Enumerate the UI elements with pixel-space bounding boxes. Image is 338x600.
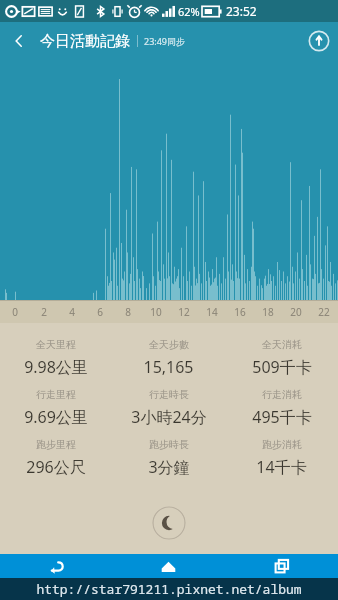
staticText: 18 [262, 305, 274, 319]
staticText: 296公尺 [26, 456, 86, 478]
button[interactable]: 跑步消耗 [225, 435, 338, 485]
button[interactable]: 跑步時長 [112, 435, 225, 485]
staticText: 4 [69, 305, 75, 319]
staticText: 今日活動記錄 [40, 32, 130, 51]
staticText: 8 [125, 305, 131, 319]
staticText: 全天里程 [36, 338, 76, 351]
staticText: 16 [234, 305, 246, 319]
button[interactable]: Home [112, 554, 225, 578]
button[interactable]: 跑步里程 [0, 435, 112, 485]
staticText: 14 [206, 305, 218, 319]
button[interactable]: Back [0, 554, 112, 578]
staticText: 全天步數 [149, 338, 189, 351]
staticText: 全天消耗 [262, 338, 302, 351]
staticText: 行走里程 [36, 388, 76, 401]
staticText: 15,165 [143, 356, 194, 378]
staticText: http://star791211.pixnet.net/album [36, 580, 302, 598]
staticText: 跑步時長 [149, 438, 189, 451]
button[interactable]: Share [300, 22, 338, 60]
staticText: 行走時長 [149, 388, 189, 401]
staticText: 509千卡 [252, 356, 312, 378]
button[interactable]: 全天步數 [112, 335, 225, 385]
staticText: 20 [290, 305, 302, 319]
staticText: 22 [318, 305, 330, 319]
staticText: 12 [178, 305, 190, 319]
staticText: 23:49同步 [144, 35, 186, 47]
button[interactable]: 行走時長 [112, 385, 225, 435]
staticText: 62% [178, 4, 200, 19]
staticText: 10 [150, 305, 162, 319]
staticText: 0 [12, 305, 18, 319]
staticText: 3分鐘 [148, 456, 190, 478]
button[interactable]: Recent apps [225, 554, 338, 578]
staticText: 9.98公里 [24, 356, 88, 378]
button[interactable]: 行走消耗 [225, 385, 338, 435]
staticText: 14千卡 [256, 456, 307, 478]
staticText: 23:52 [226, 3, 257, 19]
button[interactable]: 全天消耗 [225, 335, 338, 385]
staticText: 行走消耗 [262, 388, 302, 401]
staticText: 跑步消耗 [262, 438, 302, 451]
staticText: 3小時24分 [131, 406, 207, 428]
button[interactable]: Sleep [152, 506, 186, 540]
staticText: 2 [41, 305, 47, 319]
staticText: 495千卡 [252, 406, 312, 428]
button[interactable]: 全天里程 [0, 335, 112, 385]
staticText: 9.69公里 [24, 406, 88, 428]
staticText: 6 [97, 305, 103, 319]
button[interactable]: Back [0, 22, 38, 60]
staticText: 跑步里程 [36, 438, 76, 451]
button[interactable]: 行走里程 [0, 385, 112, 435]
